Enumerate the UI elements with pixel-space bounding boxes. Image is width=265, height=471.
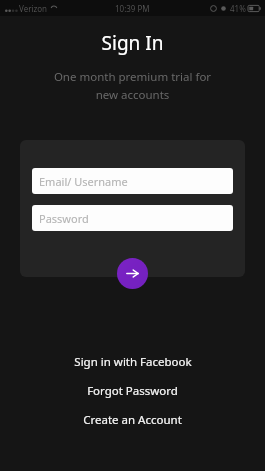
- staticText: One month premium trial for new accounts: [26, 69, 239, 102]
- button[interactable]: Email/ Username: [32, 168, 233, 194]
- button[interactable]: Password: [32, 205, 233, 231]
- staticText: Email/ Username: [39, 174, 128, 189]
- staticText: Forgot Password: [87, 383, 178, 399]
- staticText: Create an Account: [83, 412, 182, 428]
- staticText: 41%: [230, 3, 246, 14]
- button[interactable]: Sign in with Facebook: [0, 347, 265, 376]
- button[interactable]: Forgot Password: [0, 376, 265, 405]
- staticText: Sign in with Facebook: [74, 354, 192, 370]
- staticText: Sign In: [0, 30, 265, 56]
- button[interactable]: Submit sign in: [117, 258, 148, 289]
- staticText: Password: [39, 211, 89, 226]
- button[interactable]: Create an Account: [0, 405, 265, 434]
- staticText: 10:39 PM: [115, 3, 150, 14]
- staticText: Verizon: [19, 3, 48, 14]
